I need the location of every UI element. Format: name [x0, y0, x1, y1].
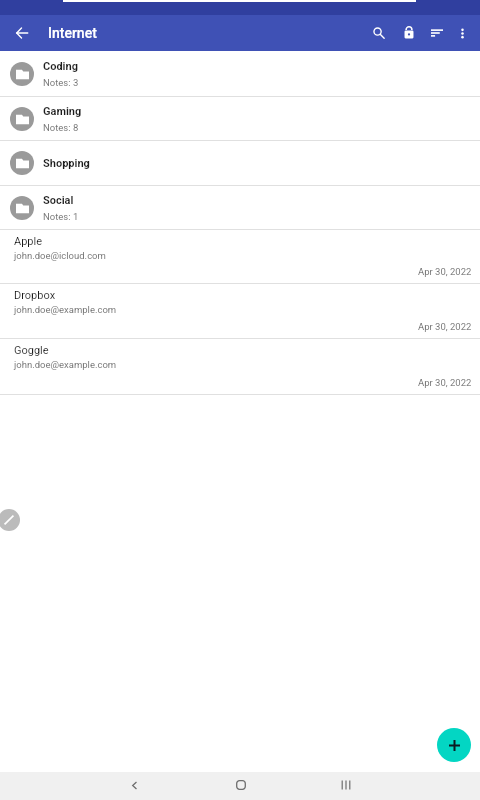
staticText: Notes: 1 — [43, 211, 79, 222]
staticText: Gaming — [43, 105, 82, 118]
button[interactable]: Recent apps — [334, 771, 357, 799]
button[interactable]: Add — [437, 728, 471, 762]
staticText: john.doe@example.com — [14, 304, 117, 315]
staticText: Coding — [43, 60, 78, 73]
staticText: Notes: 3 — [43, 77, 79, 88]
staticText: john.doe@example.com — [14, 359, 117, 370]
staticText: Notes: 8 — [43, 122, 79, 133]
button[interactable]: Dropbox — [0, 284, 480, 338]
staticText: Shopping — [43, 157, 90, 170]
button[interactable]: Sort — [423, 15, 450, 51]
staticText: Apr 30, 2022 — [418, 377, 472, 388]
staticText: Internet — [48, 25, 97, 41]
button[interactable]: Lock — [395, 15, 422, 51]
staticText: Apr 30, 2022 — [418, 321, 472, 332]
button[interactable]: Shopping — [0, 141, 480, 185]
button[interactable]: Back — [8, 15, 36, 51]
button[interactable]: Coding — [0, 51, 480, 96]
button[interactable]: Search — [365, 15, 392, 51]
button[interactable]: More options — [449, 15, 476, 51]
button[interactable]: Edit — [0, 509, 20, 531]
button[interactable]: Gaming — [0, 97, 480, 140]
staticText: Apr 30, 2022 — [418, 266, 472, 277]
button[interactable]: Goggle — [0, 339, 480, 394]
button[interactable]: Social — [0, 186, 480, 229]
button[interactable]: Back — [123, 771, 145, 799]
button[interactable]: Apple — [0, 230, 480, 283]
staticText: Dropbox — [14, 289, 56, 302]
staticText: Goggle — [14, 344, 49, 357]
staticText: Social — [43, 194, 74, 207]
staticText: john.doe@icloud.com — [14, 250, 106, 261]
button[interactable]: Home — [229, 771, 252, 799]
staticText: Apple — [14, 235, 43, 248]
